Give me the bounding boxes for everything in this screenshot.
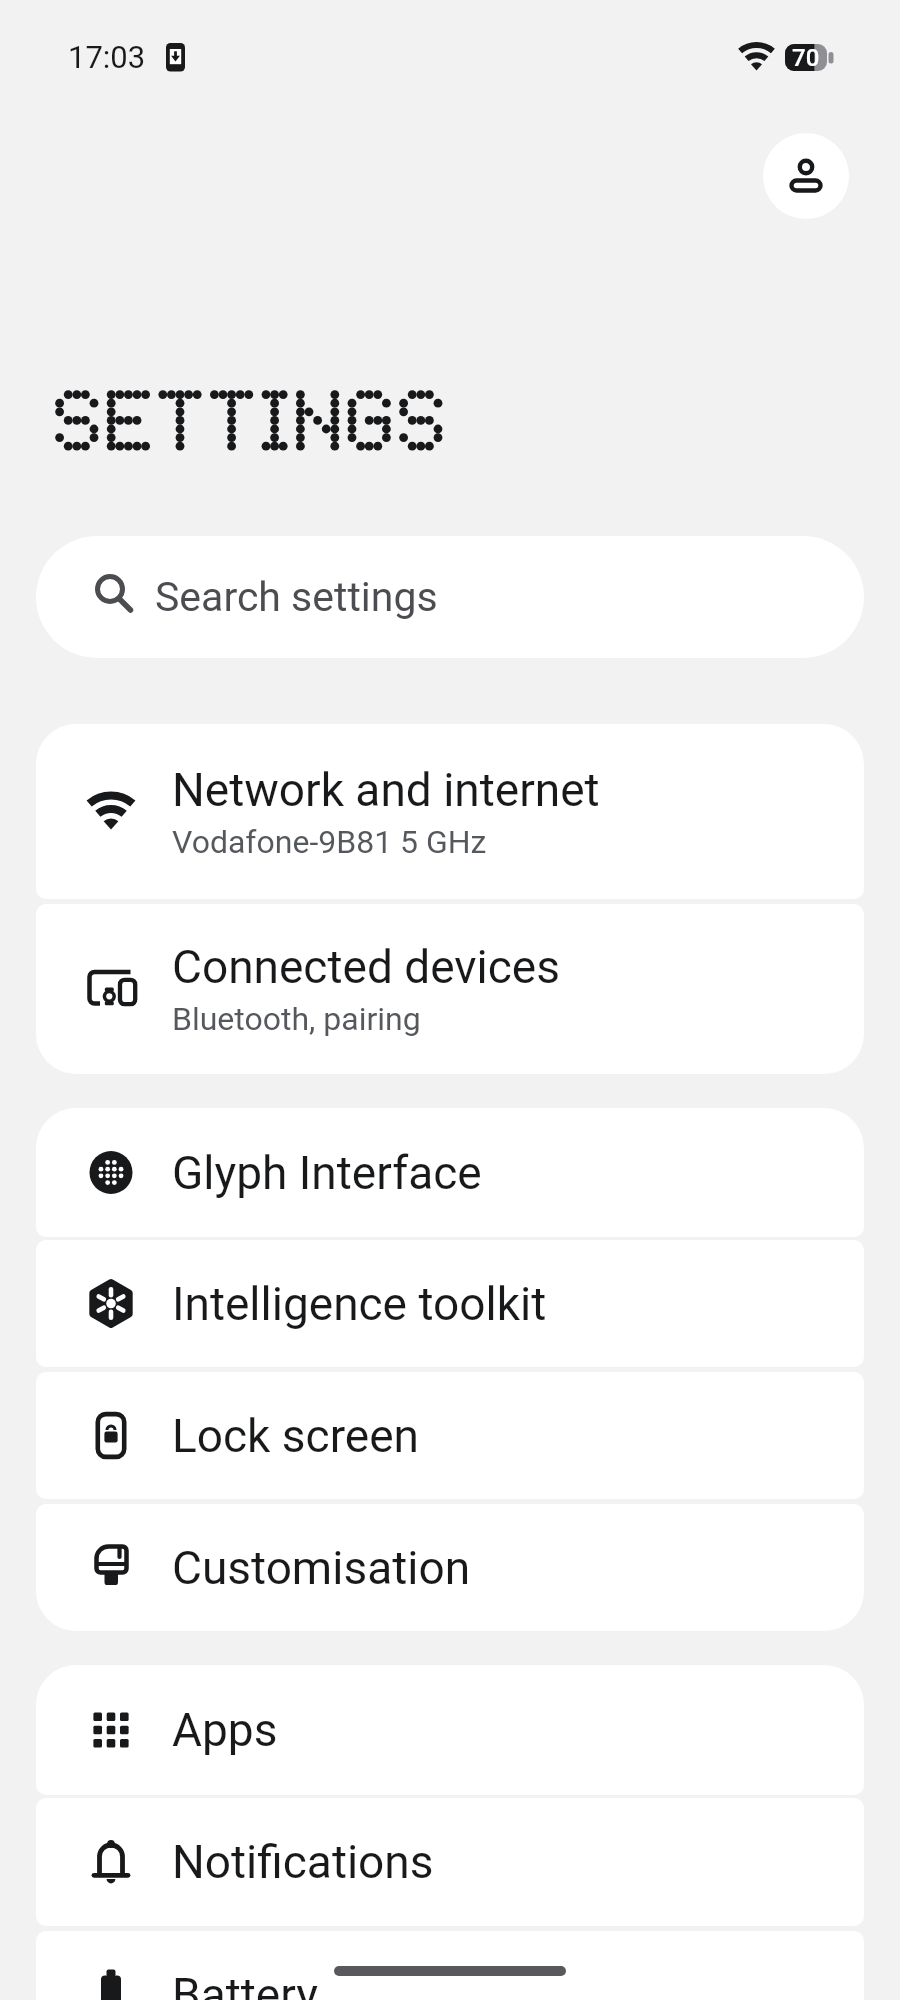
button[interactable]: Connected devices (36, 904, 864, 1074)
staticText: Connected devices (172, 940, 560, 994)
staticText: Glyph Interface (172, 1146, 482, 1200)
button[interactable]: Apps (36, 1665, 864, 1795)
button[interactable]: Network and internet (36, 724, 864, 899)
button[interactable]: Intelligence toolkit (36, 1240, 864, 1367)
button[interactable]: Notifications (36, 1798, 864, 1926)
staticText: Customisation (172, 1541, 471, 1595)
button[interactable]: Glyph Interface (36, 1108, 864, 1237)
staticText: Lock screen (172, 1409, 419, 1463)
staticText: Search settings (155, 573, 438, 621)
button[interactable]: Battery (36, 1931, 864, 2000)
staticText: Battery (172, 1968, 318, 2000)
button[interactable]: Lock screen (36, 1372, 864, 1499)
button[interactable] (763, 133, 849, 219)
staticText: 17:03 (68, 39, 146, 75)
button[interactable]: Customisation (36, 1504, 864, 1631)
staticText: Bluetooth, pairing (172, 1000, 421, 1038)
staticText: 70 (792, 44, 820, 71)
staticText: Network and internet (172, 763, 600, 817)
button[interactable]: Search settings (36, 536, 864, 658)
staticText: Intelligence toolkit (172, 1277, 547, 1331)
staticText: Vodafone-9B81 5 GHz (172, 823, 487, 861)
staticText: Notifications (172, 1835, 434, 1889)
staticText: Apps (172, 1703, 278, 1757)
